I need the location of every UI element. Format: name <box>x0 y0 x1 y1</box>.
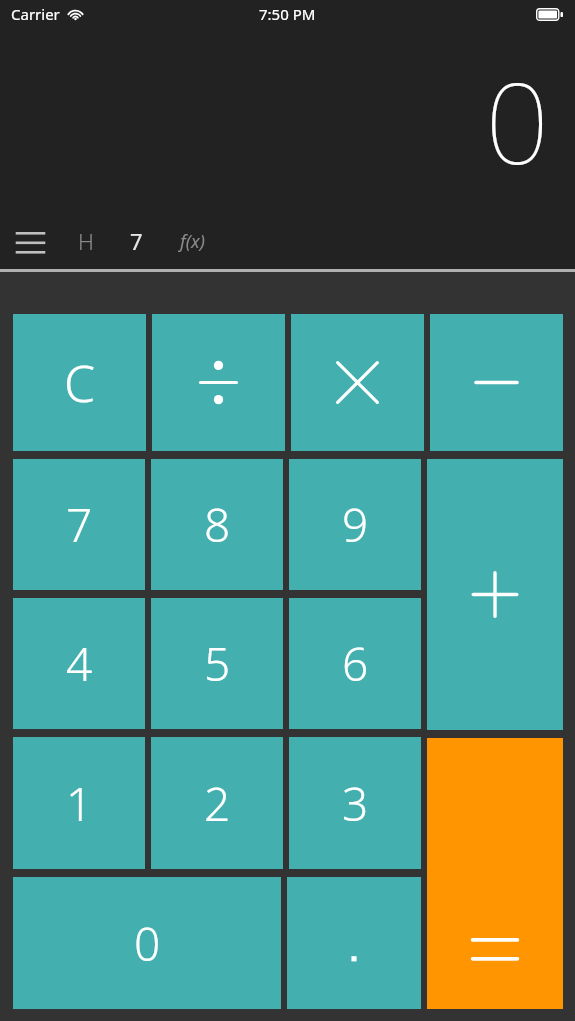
staticText: 4 <box>66 632 93 695</box>
staticText: 2 <box>204 772 231 835</box>
staticText: 7:50 PM <box>259 4 316 24</box>
staticText: 1 <box>66 772 93 835</box>
button[interactable]: 8 <box>151 459 283 590</box>
button[interactable]: 4 <box>13 598 145 729</box>
staticText: 6 <box>342 632 369 695</box>
staticText: f(x) <box>180 229 205 254</box>
button[interactable]: 0 <box>13 877 281 1009</box>
staticText: H <box>78 226 94 256</box>
button[interactable]: 9 <box>289 459 421 590</box>
button[interactable]: Subtract <box>430 314 563 451</box>
staticText: 0 <box>485 44 549 197</box>
staticText: 7 <box>66 493 93 556</box>
staticText: 0 <box>134 912 161 975</box>
button[interactable]: Divide <box>152 314 285 451</box>
button[interactable]: f(x) <box>166 221 218 261</box>
staticText: 9 <box>342 493 369 556</box>
button[interactable]: 7 <box>116 221 156 261</box>
staticText: 8 <box>204 493 231 556</box>
button[interactable]: 1 <box>13 737 145 869</box>
staticText: Carrier <box>11 4 60 24</box>
button[interactable]: Equals <box>427 738 563 1009</box>
button[interactable]: H <box>66 221 106 261</box>
button[interactable]: 5 <box>151 598 283 729</box>
button[interactable]: Multiply <box>291 314 424 451</box>
button[interactable]: 7 <box>13 459 145 590</box>
button[interactable]: Decimal point <box>287 877 421 1009</box>
staticText: 5 <box>204 632 231 695</box>
button[interactable]: 6 <box>289 598 421 729</box>
button[interactable]: 2 <box>151 737 283 869</box>
staticText: 3 <box>342 772 369 835</box>
button[interactable]: Add <box>427 459 563 730</box>
button[interactable]: 3 <box>289 737 421 869</box>
staticText: C <box>64 349 96 417</box>
staticText: 7 <box>130 226 143 256</box>
button[interactable]: Menu <box>8 219 52 263</box>
button[interactable]: C <box>13 314 146 451</box>
